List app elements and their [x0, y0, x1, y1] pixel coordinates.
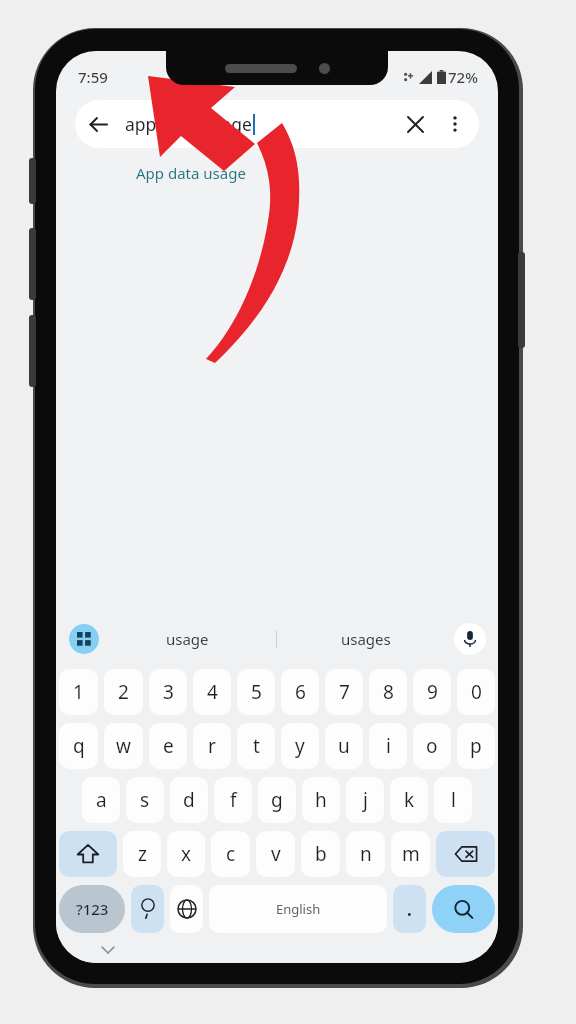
staticText: usage — [166, 629, 209, 649]
button[interactable]: More options — [435, 104, 475, 144]
button[interactable]: b — [301, 831, 340, 877]
button[interactable]: l — [434, 777, 472, 823]
staticText: app data usage — [125, 112, 252, 136]
button[interactable]: w — [104, 723, 143, 769]
staticText: u — [338, 733, 350, 759]
button[interactable]: ?123 — [59, 885, 125, 933]
button[interactable]: Search — [432, 885, 495, 933]
button[interactable]: k — [390, 777, 428, 823]
button[interactable]: 6 — [281, 669, 319, 715]
button[interactable]: Toolbar — [69, 624, 99, 654]
staticText: 7:59 — [78, 67, 108, 87]
button[interactable]: p — [457, 723, 495, 769]
button[interactable]: Change language — [170, 885, 203, 933]
button[interactable]: 7 — [325, 669, 363, 715]
button[interactable]: r — [193, 723, 231, 769]
button[interactable]: . — [393, 885, 426, 933]
staticText: a — [96, 787, 107, 813]
button[interactable]: m — [391, 831, 430, 877]
staticText: v — [271, 841, 281, 867]
button[interactable]: h — [302, 777, 340, 823]
button[interactable]: 0 — [457, 669, 495, 715]
staticText: n — [360, 841, 372, 867]
button[interactable]: z — [123, 831, 161, 877]
button[interactable]: d — [170, 777, 208, 823]
button[interactable]: v — [256, 831, 295, 877]
button[interactable]: g — [258, 777, 296, 823]
button[interactable]: Voice input — [454, 623, 486, 655]
staticText: 2 — [118, 679, 129, 705]
button[interactable]: Shift — [59, 831, 117, 877]
button[interactable]: u — [325, 723, 363, 769]
button[interactable]: i — [369, 723, 407, 769]
staticText: App data usage — [136, 163, 246, 183]
staticText: j — [363, 787, 368, 813]
button[interactable]: t — [237, 723, 275, 769]
button[interactable]: 9 — [413, 669, 451, 715]
staticText: t — [253, 733, 260, 759]
button[interactable]: y — [281, 723, 319, 769]
button[interactable]: a — [82, 777, 120, 823]
button[interactable]: 1 — [59, 669, 98, 715]
button[interactable]: Clear — [395, 104, 435, 144]
button[interactable]: e — [149, 723, 187, 769]
staticText: o — [426, 733, 438, 759]
staticText: s — [140, 787, 150, 813]
button[interactable]: Emoji — [131, 885, 164, 933]
staticText: c — [226, 841, 236, 867]
staticText: 0 — [471, 679, 482, 705]
staticText: g — [271, 787, 283, 813]
button[interactable]: 5 — [237, 669, 275, 715]
button[interactable]: 4 — [193, 669, 231, 715]
staticText: i — [386, 733, 391, 759]
staticText: p — [470, 733, 482, 759]
staticText: w — [116, 733, 131, 759]
staticText: x — [181, 841, 192, 867]
button[interactable]: Backspace — [436, 831, 495, 877]
staticText: ?123 — [76, 899, 109, 919]
staticText: 4 — [207, 679, 218, 705]
staticText: f — [230, 787, 237, 813]
staticText: k — [404, 787, 415, 813]
staticText: 6 — [295, 679, 306, 705]
staticText: q — [73, 733, 85, 759]
staticText: 3 — [163, 679, 174, 705]
staticText: English — [276, 900, 321, 918]
button[interactable]: usage — [99, 617, 276, 661]
button[interactable]: s — [126, 777, 164, 823]
button[interactable]: n — [346, 831, 385, 877]
button[interactable]: x — [167, 831, 205, 877]
staticText: 8 — [383, 679, 394, 705]
button[interactable]: English — [209, 885, 387, 933]
staticText: r — [208, 733, 216, 759]
button[interactable]: App data usage — [56, 158, 498, 188]
button[interactable]: j — [346, 777, 384, 823]
button[interactable]: q — [59, 723, 98, 769]
staticText: y — [295, 733, 305, 759]
button[interactable]: c — [211, 831, 250, 877]
button[interactable]: f — [214, 777, 252, 823]
button[interactable]: 2 — [104, 669, 143, 715]
staticText: e — [163, 733, 174, 759]
staticText: b — [315, 841, 327, 867]
staticText: z — [138, 841, 147, 867]
staticText: 5 — [251, 679, 262, 705]
staticText: 1 — [73, 679, 84, 705]
staticText: l — [451, 787, 456, 813]
staticText: d — [183, 787, 195, 813]
button[interactable]: usages — [277, 617, 454, 661]
staticText: usages — [341, 629, 391, 649]
staticText: 72% — [448, 67, 478, 87]
staticText: m — [402, 841, 420, 867]
button[interactable]: 8 — [369, 669, 407, 715]
button[interactable]: 3 — [149, 669, 187, 715]
staticText: h — [315, 787, 327, 813]
staticText: 7 — [339, 679, 350, 705]
button[interactable]: Back — [75, 101, 121, 147]
staticText: 9 — [427, 679, 438, 705]
button[interactable]: Back — [75, 100, 479, 148]
staticText: . — [407, 898, 412, 921]
button[interactable]: o — [413, 723, 451, 769]
